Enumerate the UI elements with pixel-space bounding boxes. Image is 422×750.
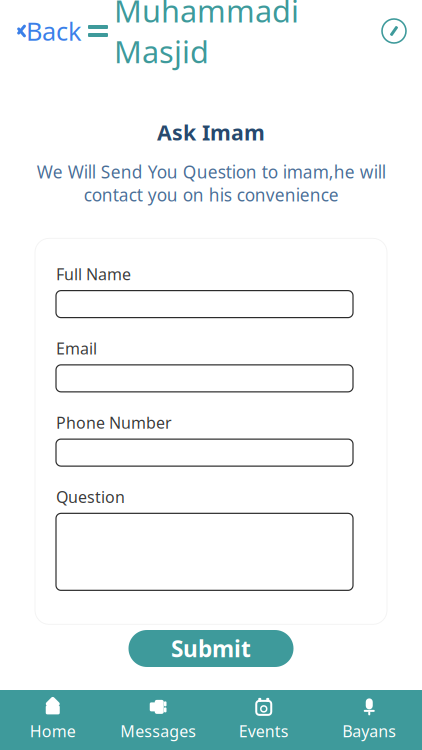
- staticText: Ask Imam: [157, 118, 265, 146]
- staticText: Bayans: [342, 720, 396, 742]
- staticText: Home: [30, 720, 76, 742]
- staticText: Events: [239, 720, 289, 742]
- staticText: Messages: [120, 720, 196, 742]
- button[interactable]: Messages: [105, 690, 211, 750]
- staticText: Full Name: [56, 263, 131, 285]
- staticText: We Will Send You Question to imam,he wil…: [36, 160, 385, 206]
- button[interactable]: Submit: [128, 630, 293, 667]
- staticText: Question: [56, 486, 125, 507]
- button[interactable]: Events: [211, 690, 316, 750]
- button[interactable]: Home: [0, 690, 105, 750]
- button[interactable]: Menu: [82, 17, 114, 45]
- staticText: Phone Number: [56, 412, 172, 433]
- button[interactable]: Bayans: [316, 690, 422, 750]
- staticText: Muhammadi Masjid: [114, 0, 299, 72]
- staticText: Back: [26, 14, 82, 48]
- staticText: Email: [56, 338, 97, 359]
- button[interactable]: Qibla compass: [380, 11, 422, 51]
- staticText: Submit: [171, 633, 251, 663]
- button[interactable]: Back: [0, 8, 82, 54]
